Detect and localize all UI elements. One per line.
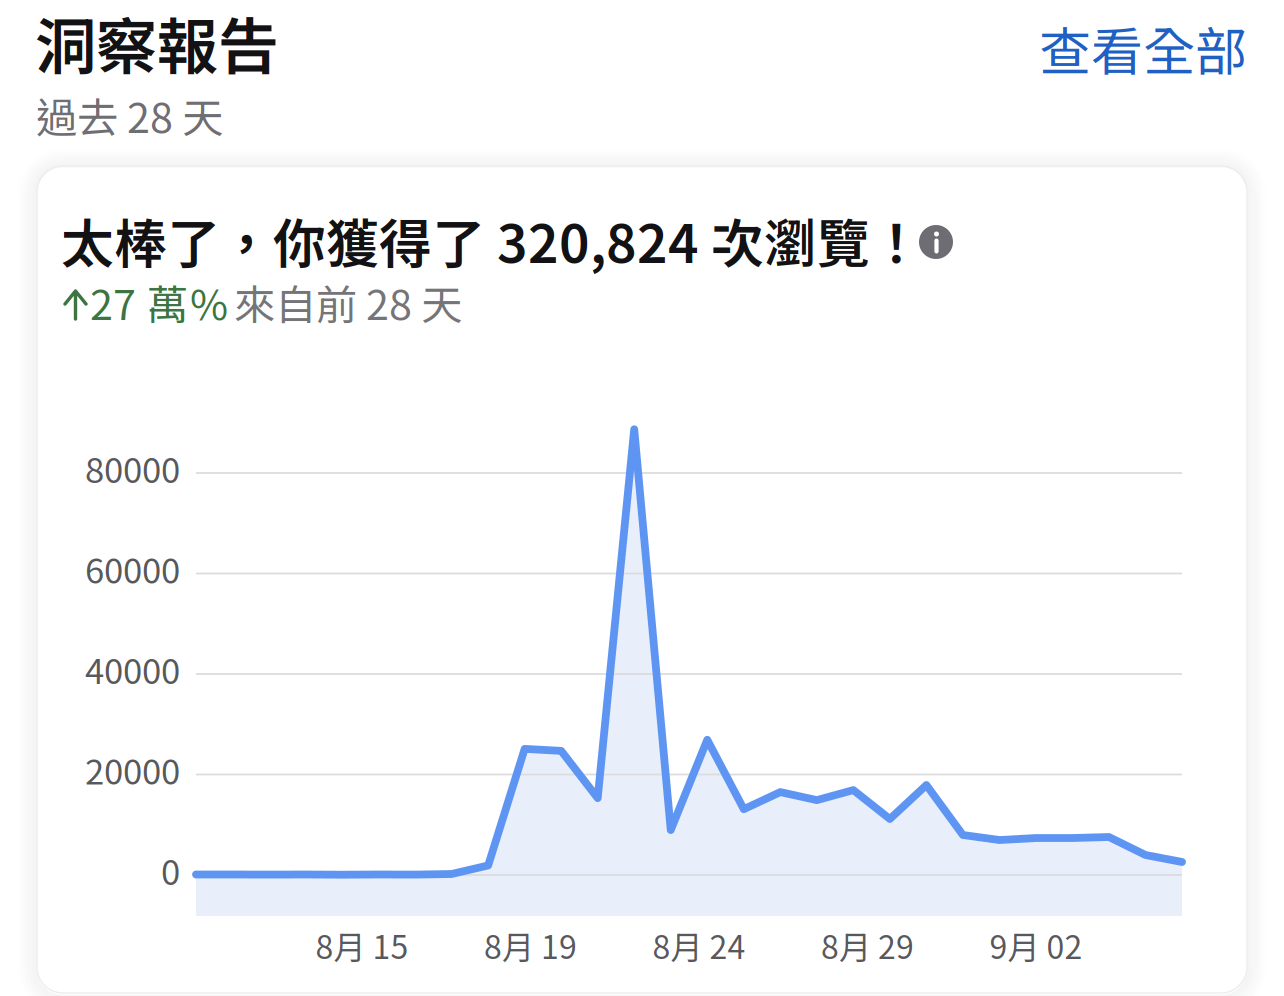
- button[interactable]: 查看全部: [987, 12, 1247, 84]
- staticText: 40000: [85, 644, 180, 694]
- staticText: 8月 19: [484, 922, 577, 968]
- staticText: 萬: [147, 272, 188, 332]
- staticText: 20000: [85, 744, 180, 795]
- staticText: 80000: [85, 443, 180, 493]
- staticText: 27: [90, 272, 136, 332]
- staticText: 8月 24: [652, 922, 745, 968]
- button[interactable]: 更多資訊: [919, 225, 953, 259]
- staticText: 60000: [85, 543, 180, 594]
- staticText: 0: [161, 845, 180, 895]
- staticText: %: [190, 272, 228, 332]
- staticText: 來自前 28 天: [234, 272, 462, 332]
- staticText: 9月 02: [989, 922, 1082, 968]
- staticText: 8月 29: [821, 922, 914, 968]
- staticText: 過去 28 天: [36, 85, 223, 145]
- staticText: 查看全部: [1039, 10, 1247, 86]
- staticText: 8月 15: [315, 922, 408, 968]
- staticText: 太棒了，你獲得了 320,824 次瀏覽！: [61, 202, 923, 278]
- staticText: 洞察報告: [35, 0, 279, 87]
